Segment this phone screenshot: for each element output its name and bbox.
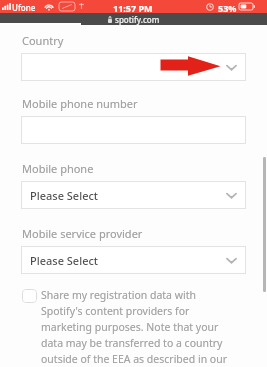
staticText: Country (22, 33, 64, 48)
staticText: Mobile phone number (22, 96, 138, 111)
staticText: Share my registration data with Spotify'… (41, 288, 231, 366)
staticText: Please Select (30, 253, 99, 268)
staticText: 11:57 PM (113, 2, 153, 14)
button[interactable]: Share my registration data checkbox (22, 289, 37, 303)
staticText: Mobile phone (22, 161, 94, 176)
button[interactable]: Text field (21, 116, 246, 144)
button[interactable]: Text field (21, 53, 246, 81)
button[interactable]: Please Select (21, 246, 246, 274)
staticText: 53% (218, 2, 237, 14)
staticText: Mobile service provider (22, 226, 143, 241)
staticText: Please Select (30, 188, 99, 203)
staticText: Ufone (12, 2, 36, 13)
button[interactable]: Please Select (21, 181, 246, 209)
staticText: spotify.com (115, 14, 160, 25)
